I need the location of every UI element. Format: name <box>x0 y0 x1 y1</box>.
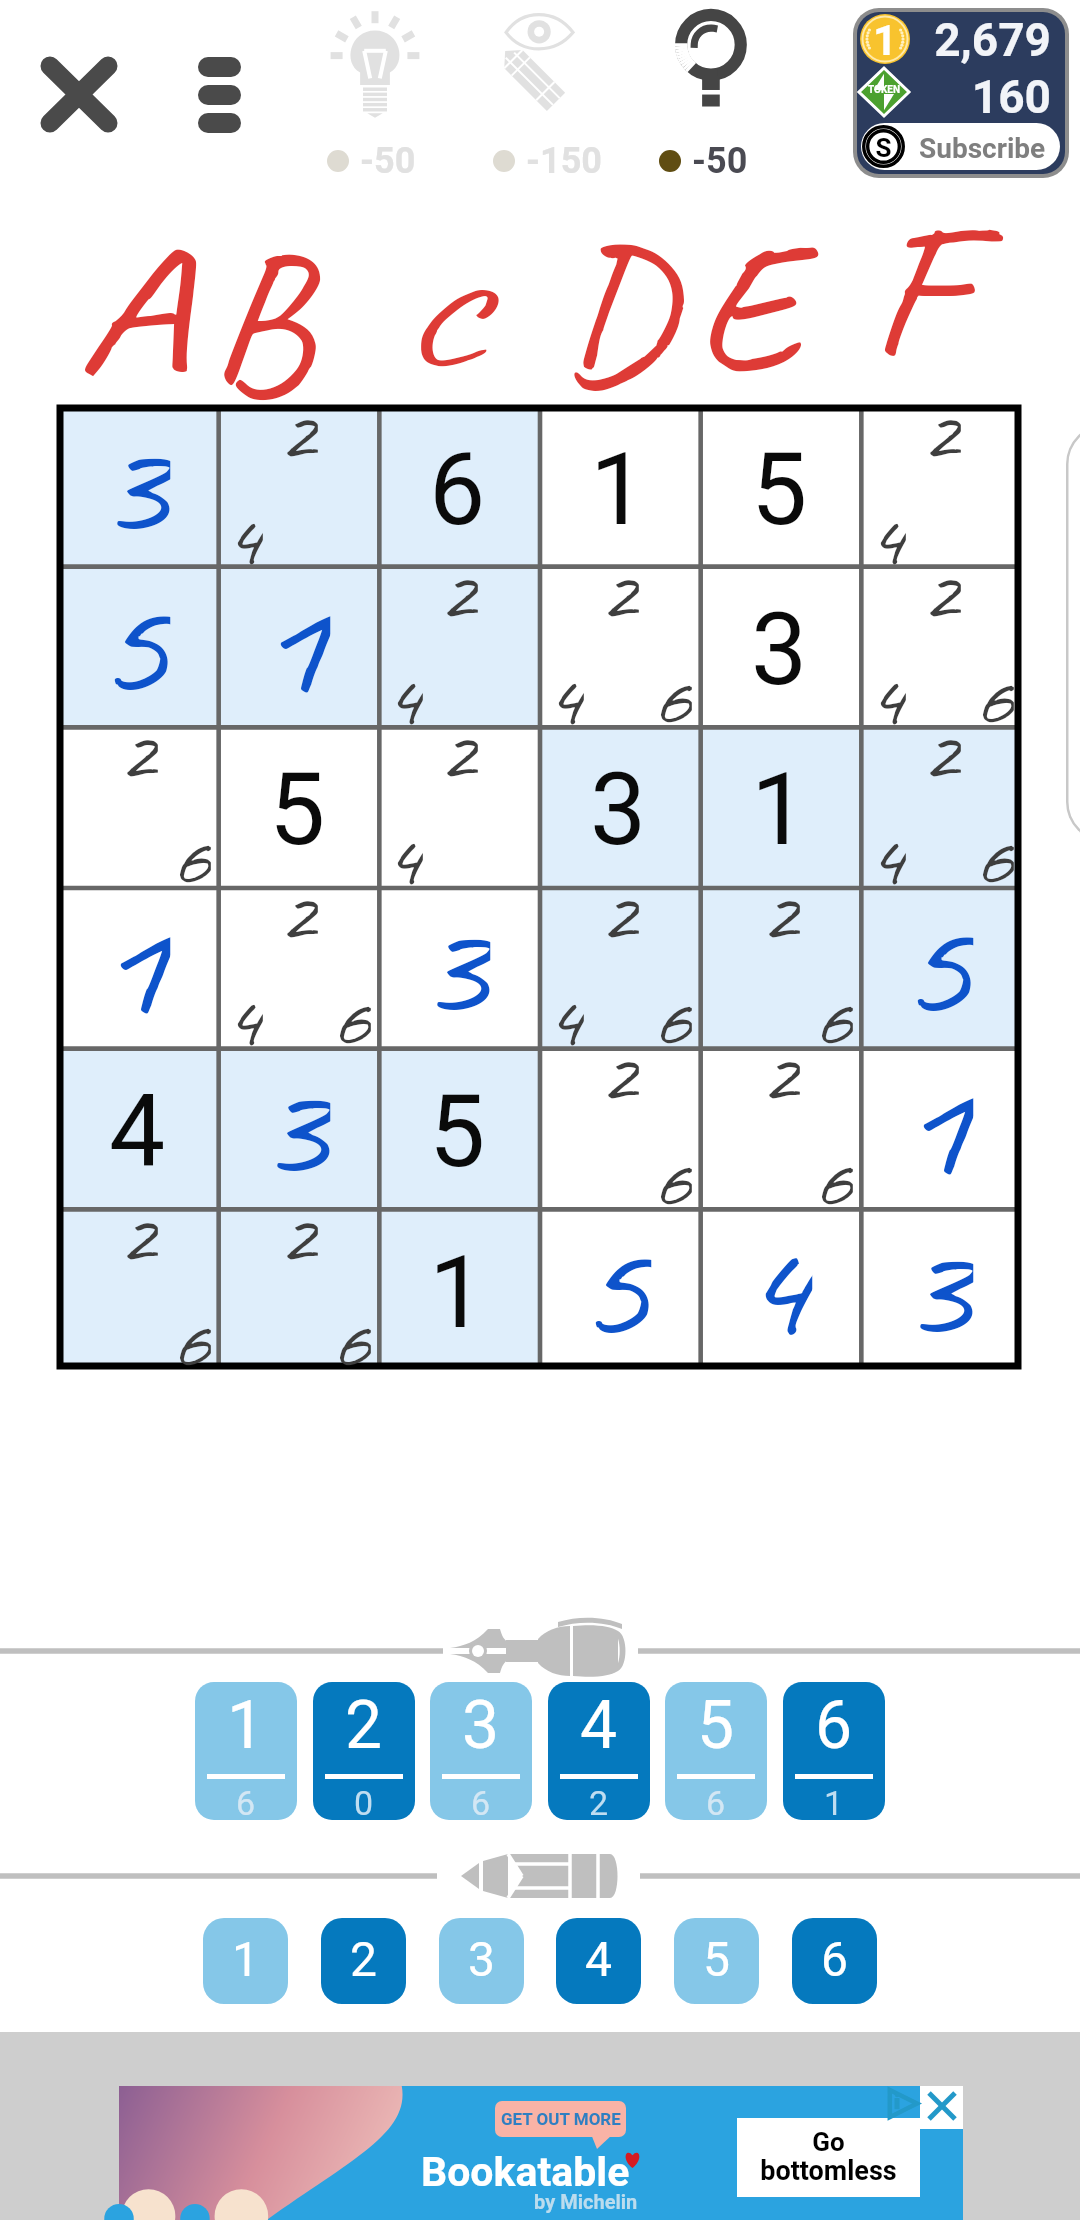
staticText: 4 <box>585 1931 612 1987</box>
staticText: 3 <box>751 591 808 708</box>
button[interactable]: 2 <box>57 1208 217 1369</box>
staticText: 6 <box>815 1687 853 1764</box>
button[interactable]: 2 <box>860 565 1021 725</box>
button[interactable]: 2 <box>538 886 699 1047</box>
button[interactable]: 2 <box>57 725 217 886</box>
button[interactable]: 5 <box>665 1682 767 1820</box>
button[interactable]: Close <box>26 43 130 147</box>
staticText: 4 <box>735 1205 812 1366</box>
staticText: -150 <box>526 140 602 182</box>
staticText: 5 <box>703 1931 730 1987</box>
staticText: 6 <box>650 1139 692 1207</box>
button[interactable]: 1 <box>699 725 860 886</box>
staticText: by Michelin <box>534 2190 638 2213</box>
staticText: D <box>559 198 671 427</box>
button[interactable]: 2 <box>217 1208 377 1369</box>
staticText: 4 <box>381 817 423 885</box>
button[interactable]: 3 <box>538 725 699 886</box>
button[interactable]: 5 <box>699 405 860 565</box>
staticText: 6 <box>811 978 853 1046</box>
button[interactable]: Menu <box>180 45 260 125</box>
button[interactable]: 1 <box>57 886 217 1047</box>
staticText: C <box>401 260 485 391</box>
staticText: -50 <box>360 140 416 182</box>
button[interactable]: 2 <box>313 1682 415 1820</box>
button[interactable]: 5 <box>217 725 377 886</box>
button[interactable]: 3 <box>430 1682 532 1820</box>
staticText: 2 <box>597 551 639 619</box>
button[interactable]: 1 <box>217 565 377 725</box>
staticText: 6 <box>650 657 692 725</box>
staticText: 1 <box>860 16 910 65</box>
button[interactable]: 1 <box>195 1682 297 1820</box>
staticText: 160 <box>907 70 1051 124</box>
button[interactable]: 3 <box>439 1918 524 2004</box>
button[interactable]: 6 <box>783 1682 885 1820</box>
button[interactable]: Solve cell <box>655 6 765 176</box>
button[interactable]: 6 <box>792 1918 877 2004</box>
button[interactable]: Advertisement <box>119 2086 963 2220</box>
button[interactable]: 2 <box>538 1047 699 1208</box>
staticText: 1 <box>824 1783 844 1820</box>
button[interactable]: 1 <box>203 1918 288 2004</box>
staticText: 6 <box>811 1139 853 1207</box>
button[interactable]: 3 <box>860 1208 1021 1369</box>
button[interactable]: 5 <box>377 1047 538 1208</box>
staticText: 2 <box>276 872 318 940</box>
staticText: 6 <box>169 1300 211 1368</box>
button[interactable]: 5 <box>860 886 1021 1047</box>
staticText: 4 <box>864 817 906 885</box>
button[interactable]: 3 <box>217 1047 377 1208</box>
staticText: 1 <box>590 431 647 548</box>
button[interactable]: 2 <box>321 1918 406 2004</box>
button[interactable]: 2 <box>699 1047 860 1208</box>
button[interactable]: 1 <box>538 405 699 565</box>
button[interactable]: 5 <box>57 565 217 725</box>
button[interactable]: 3 <box>699 565 860 725</box>
staticText: Bookatable <box>421 2148 630 2196</box>
button[interactable]: 2 <box>377 725 538 886</box>
staticText: 2,679 <box>907 13 1051 67</box>
staticText: 0 <box>354 1783 374 1820</box>
staticText: S <box>862 133 905 163</box>
staticText: 2 <box>919 391 961 459</box>
button[interactable]: 3 <box>57 405 217 565</box>
button[interactable]: 4 <box>57 1047 217 1208</box>
staticText: 4 <box>109 1073 166 1190</box>
staticText: 3 <box>93 402 170 562</box>
button[interactable]: 5 <box>538 1208 699 1369</box>
staticText: 5 <box>93 562 170 722</box>
button[interactable]: 4 <box>556 1918 641 2004</box>
staticText: 1 <box>896 1044 973 1205</box>
button[interactable]: 1 <box>377 1208 538 1369</box>
staticText: 6 <box>972 657 1014 725</box>
button[interactable]: S <box>861 123 1060 170</box>
button[interactable]: 2 <box>538 565 699 725</box>
button[interactable]: 2 <box>699 886 860 1047</box>
staticText: 1 <box>232 1931 259 1987</box>
button[interactable]: 4 <box>548 1682 650 1820</box>
button[interactable]: Hint <box>320 6 430 176</box>
button[interactable]: 2 <box>860 405 1021 565</box>
button[interactable]: 5 <box>674 1918 759 2004</box>
staticText: 2 <box>276 1194 318 1262</box>
button[interactable]: 1 <box>857 12 1065 174</box>
staticText: 3 <box>896 1205 973 1366</box>
button[interactable]: 3 <box>377 886 538 1047</box>
staticText: 1 <box>93 883 170 1044</box>
button[interactable]: Reveal <box>490 6 600 176</box>
staticText: 2 <box>345 1687 383 1764</box>
staticText: F <box>868 170 963 409</box>
button[interactable]: 2 <box>217 886 377 1047</box>
staticText: 2 <box>758 872 800 940</box>
button[interactable]: 4 <box>699 1208 860 1369</box>
button[interactable]: 2 <box>377 565 538 725</box>
button[interactable]: 6 <box>377 405 538 565</box>
button[interactable]: 2 <box>860 725 1021 886</box>
button[interactable]: 1 <box>860 1047 1021 1208</box>
staticText: 2 <box>589 1783 609 1820</box>
button[interactable]: 2 <box>217 405 377 565</box>
staticText: 4 <box>542 978 584 1046</box>
staticText: 4 <box>542 657 584 725</box>
staticText: Subscribe <box>919 132 1046 165</box>
